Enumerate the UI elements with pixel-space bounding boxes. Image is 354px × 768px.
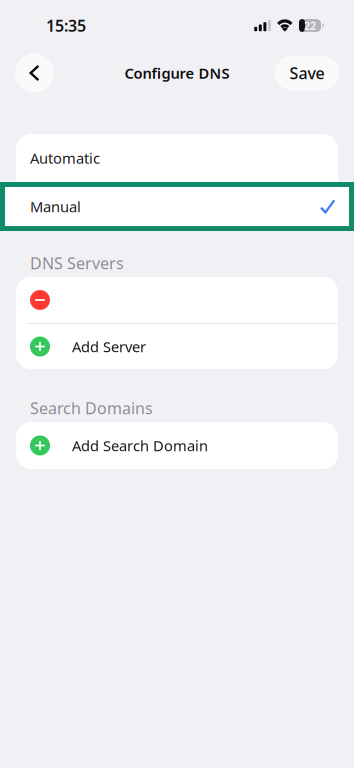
button[interactable]: Add Search Domain — [16, 422, 338, 469]
staticText: Configure DNS — [124, 63, 229, 83]
staticText: Add Search Domain — [72, 436, 208, 455]
staticText: DNS Servers — [30, 252, 124, 274]
staticText: Automatic — [30, 148, 100, 168]
button[interactable]: Automatic — [16, 134, 338, 182]
button[interactable]: Manual — [0, 182, 354, 231]
button[interactable]: Add Server — [16, 324, 338, 369]
staticText: Add Server — [72, 337, 146, 356]
staticText: 22 — [304, 18, 316, 33]
staticText: Search Domains — [30, 397, 153, 419]
staticText: 15:35 — [46, 15, 86, 36]
button[interactable]: Remove DNS server — [16, 277, 338, 323]
staticText: Manual — [30, 197, 81, 216]
button[interactable]: Back — [15, 53, 54, 92]
button[interactable]: Save — [275, 56, 339, 90]
staticText: Save — [289, 62, 324, 84]
